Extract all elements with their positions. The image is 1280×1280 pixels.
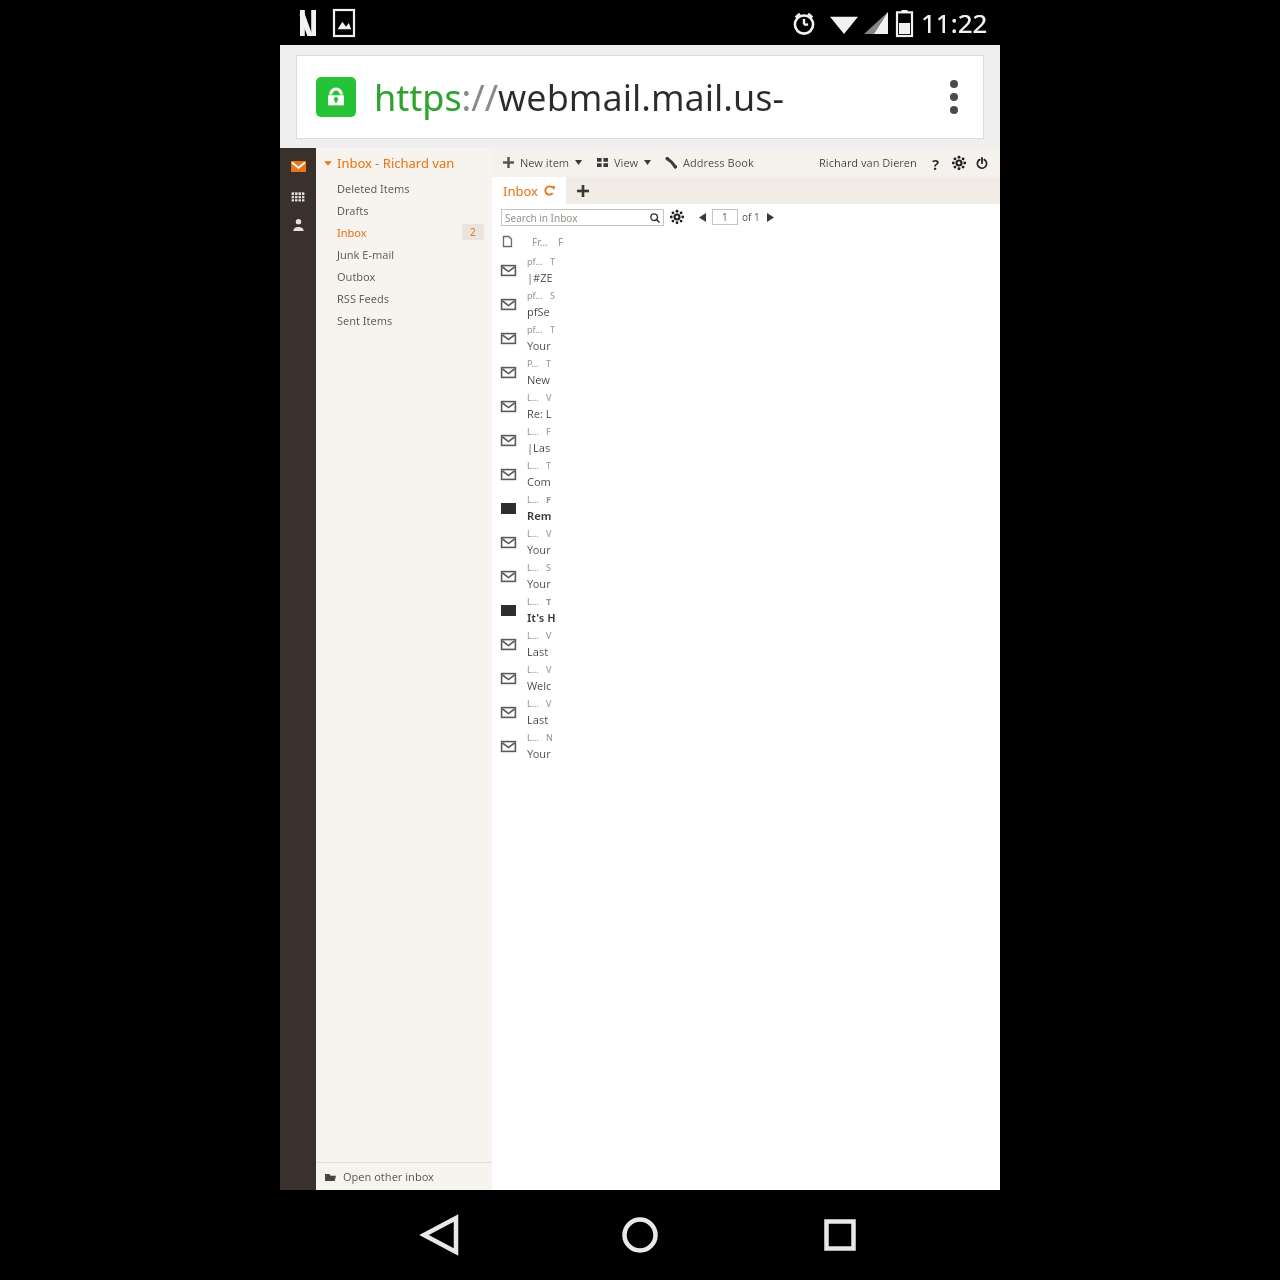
staticText: L… xyxy=(527,561,539,573)
button[interactable]: Drafts xyxy=(316,199,492,221)
button[interactable]: Home xyxy=(540,1190,740,1280)
button[interactable]: Search in Inbox xyxy=(501,209,664,226)
staticText: L… xyxy=(527,527,539,539)
staticText: pf… xyxy=(527,255,543,267)
staticText: Open other inbox xyxy=(343,1169,434,1184)
staticText: T xyxy=(550,255,556,267)
button[interactable]: Deleted Items xyxy=(316,177,492,199)
staticText: V xyxy=(546,697,552,709)
staticText: L… xyxy=(527,425,539,437)
staticText: L… xyxy=(527,595,539,607)
button[interactable]: Settings xyxy=(950,154,968,172)
button[interactable]: New item xyxy=(503,148,582,177)
button[interactable]: Back xyxy=(340,1190,540,1280)
button[interactable]: Module xyxy=(288,185,308,205)
button[interactable]: L… xyxy=(492,695,1000,729)
staticText: V xyxy=(546,391,552,403)
button[interactable]: pf… xyxy=(492,321,1000,355)
staticText: F xyxy=(546,425,551,437)
button[interactable]: L… xyxy=(492,423,1000,457)
button[interactable]: Open other inbox xyxy=(316,1163,492,1190)
staticText: Address Book xyxy=(683,155,754,170)
button[interactable]: L… xyxy=(492,457,1000,491)
staticText: T xyxy=(550,323,556,335)
staticText: Inbox - Richard van Dieren xyxy=(337,154,484,172)
staticText: View xyxy=(614,155,639,170)
button[interactable]: pf… xyxy=(492,287,1000,321)
staticText: P… xyxy=(527,357,539,369)
staticText: S xyxy=(546,561,551,573)
staticText: T xyxy=(546,595,552,607)
staticText: 2 xyxy=(470,225,476,239)
staticText: of 1 xyxy=(742,210,760,224)
staticText: Fr… xyxy=(532,235,548,249)
button[interactable]: P… xyxy=(492,355,1000,389)
staticText: L… xyxy=(527,731,539,743)
button[interactable]: Mail xyxy=(288,156,308,176)
staticText: New xyxy=(527,372,550,387)
button[interactable]: L… xyxy=(492,491,1000,525)
staticText: L… xyxy=(527,459,539,471)
button[interactable]: View xyxy=(597,148,651,177)
button[interactable]: L… xyxy=(492,661,1000,695)
button[interactable]: 1 xyxy=(712,209,738,225)
staticText: 11:22 xyxy=(921,5,988,40)
staticText: V xyxy=(546,629,552,641)
button[interactable]: L… xyxy=(492,593,1000,627)
button[interactable]: L… xyxy=(492,729,1000,763)
button[interactable]: Inbox xyxy=(492,177,566,204)
button[interactable]: New tab xyxy=(566,177,600,204)
button[interactable]: Sent Items xyxy=(316,309,492,331)
button[interactable]: Outbox xyxy=(316,265,492,287)
button[interactable]: pf… xyxy=(492,253,1000,287)
button[interactable]: Search options xyxy=(669,209,685,225)
staticText: Inbox xyxy=(337,225,367,240)
button[interactable]: Module xyxy=(288,214,308,234)
button[interactable]: Inbox - Richard van Dieren xyxy=(316,148,492,177)
staticText: pf… xyxy=(527,323,543,335)
staticText: L… xyxy=(527,493,539,505)
staticText: RSS Feeds xyxy=(337,291,389,306)
button[interactable]: Help xyxy=(927,154,945,172)
staticText: Your xyxy=(527,746,551,761)
staticText: T xyxy=(546,357,552,369)
staticText: F xyxy=(558,235,564,249)
button[interactable]: Recent apps xyxy=(740,1190,940,1280)
staticText: |Las xyxy=(527,440,551,455)
staticText: pfSe xyxy=(527,304,550,319)
staticText: Sent Items xyxy=(337,313,393,328)
staticText: New item xyxy=(520,155,570,170)
button[interactable]: Next page xyxy=(763,210,777,224)
staticText: L… xyxy=(527,391,539,403)
staticText: pf… xyxy=(527,289,543,301)
staticText: S xyxy=(550,289,555,301)
staticText: L… xyxy=(527,697,539,709)
staticText: Your xyxy=(527,542,551,557)
staticText: Com xyxy=(527,474,551,489)
staticText: Drafts xyxy=(337,203,369,218)
button[interactable]: Address Book xyxy=(666,148,754,177)
staticText: Last xyxy=(527,712,549,727)
staticText: Your xyxy=(527,576,551,591)
staticText: Junk E-mail xyxy=(337,247,395,262)
button[interactable]: L… xyxy=(492,559,1000,593)
staticText: It's H xyxy=(527,610,556,625)
button[interactable]: More options xyxy=(932,75,976,119)
staticText: F xyxy=(546,493,551,505)
button[interactable]: L… xyxy=(492,389,1000,423)
staticText: Search in Inbox xyxy=(505,211,578,225)
button[interactable]: Previous page xyxy=(695,210,709,224)
staticText: 1 xyxy=(722,210,728,224)
staticText: Inbox xyxy=(503,182,538,200)
button[interactable]: L… xyxy=(492,525,1000,559)
staticText: N xyxy=(546,731,553,743)
button[interactable]: Sign out xyxy=(973,154,991,172)
staticText: Re: L xyxy=(527,406,552,421)
staticText: Richard van Dieren xyxy=(819,155,917,170)
button[interactable]: Junk E-mail xyxy=(316,243,492,265)
button[interactable]: L… xyxy=(492,627,1000,661)
button[interactable]: https://webmail.mail.us-east-1.awsa xyxy=(296,55,984,139)
button[interactable]: Inbox xyxy=(316,221,492,243)
staticText: V xyxy=(546,527,552,539)
button[interactable]: RSS Feeds xyxy=(316,287,492,309)
